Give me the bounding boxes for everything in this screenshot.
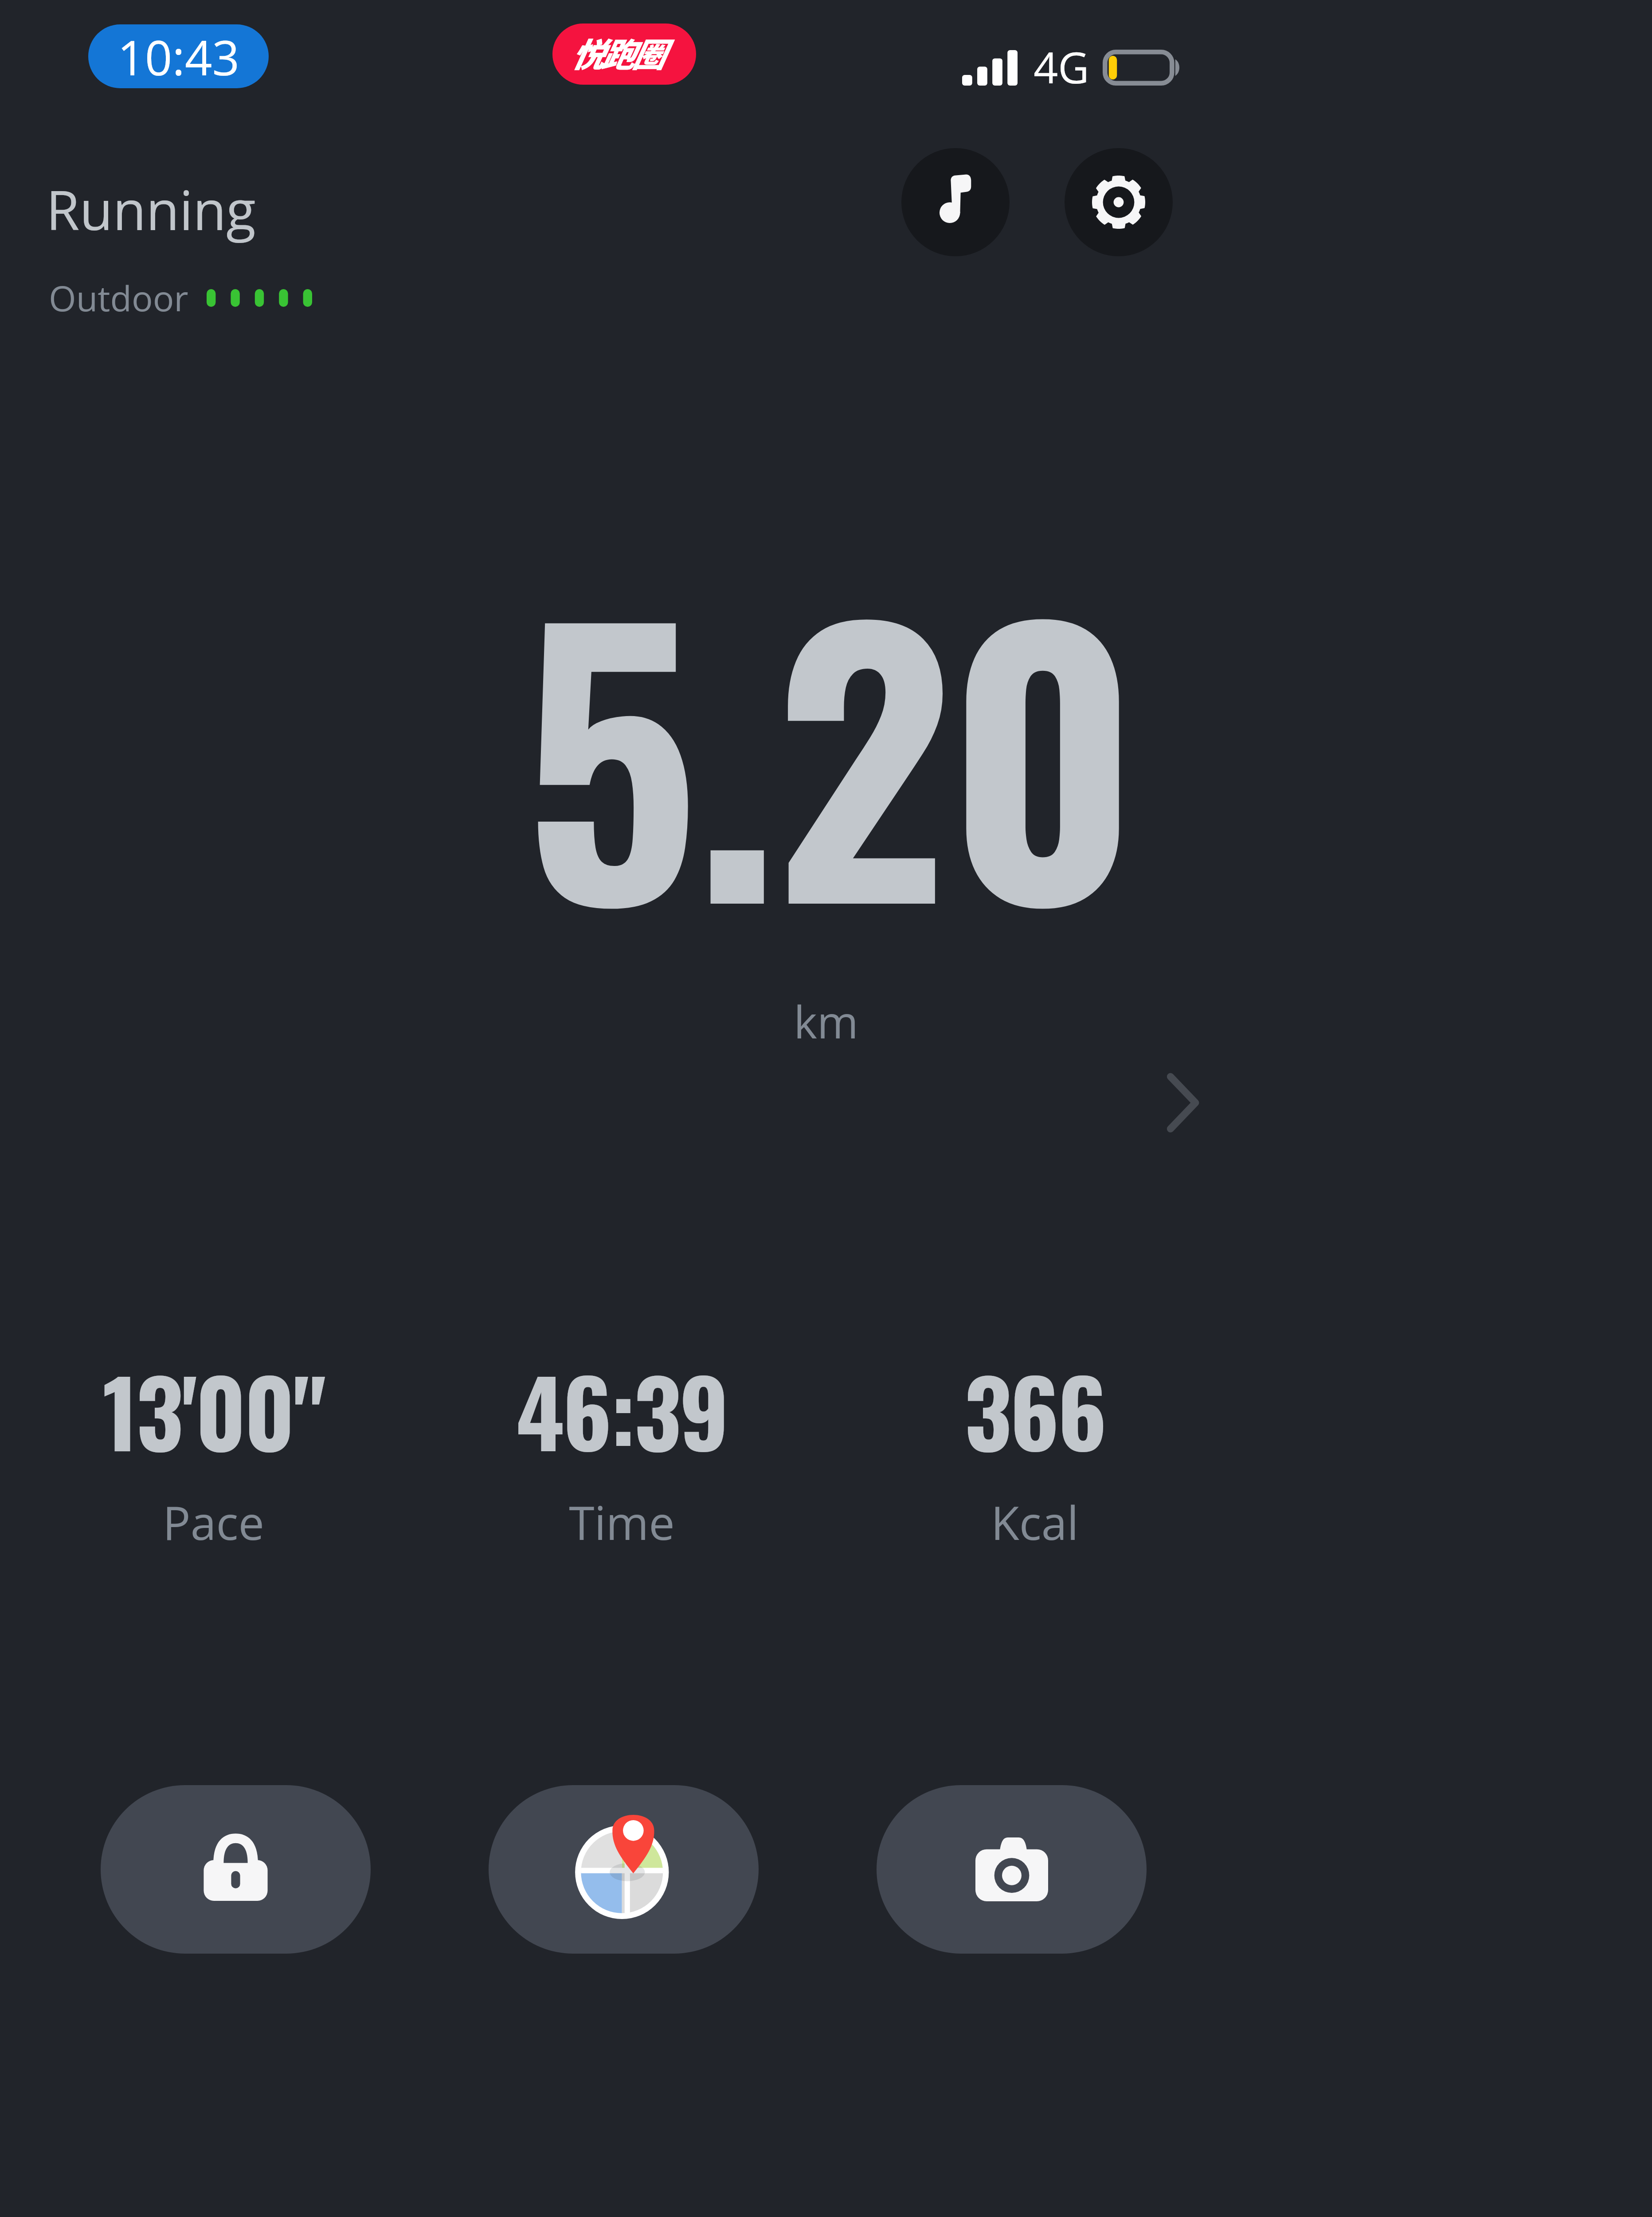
- button[interactable]: Lock: [101, 1785, 371, 1954]
- staticText: 366: [964, 1342, 1105, 1478]
- staticText: km: [0, 991, 1652, 1052]
- staticText: Kcal: [991, 1491, 1079, 1554]
- staticText: Time: [569, 1491, 675, 1554]
- button[interactable]: Settings: [1065, 148, 1173, 256]
- button[interactable]: Pace: [29, 1342, 397, 1554]
- button[interactable]: Kcal: [851, 1342, 1219, 1554]
- staticText: Pace: [163, 1491, 264, 1554]
- button[interactable]: Camera: [877, 1785, 1147, 1954]
- button[interactable]: Music: [901, 148, 1010, 256]
- button[interactable]: Next: [1145, 1066, 1219, 1140]
- staticText: 悦跑圈: [571, 28, 662, 76]
- staticText: 46:39: [516, 1342, 727, 1478]
- staticText: Running: [46, 172, 256, 246]
- staticText: 5.20: [2, 491, 1652, 1004]
- staticText: 13'00": [102, 1342, 325, 1478]
- staticText: 4G: [1033, 38, 1089, 96]
- button[interactable]: Map: [489, 1785, 759, 1954]
- button[interactable]: Time: [438, 1342, 806, 1554]
- staticText: Outdoor: [49, 274, 188, 321]
- staticText: 10:43: [117, 24, 240, 88]
